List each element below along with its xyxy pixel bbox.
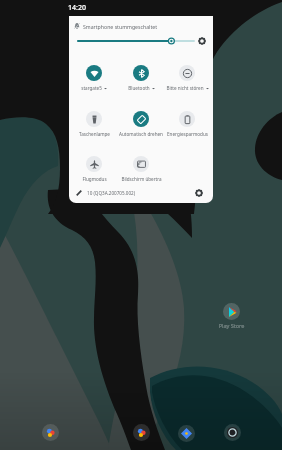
staticText: stargate5 [81, 85, 102, 91]
staticText: Smartphone stummgeschaltet [83, 23, 158, 30]
button[interactable]: Photos [42, 424, 59, 441]
button[interactable]: stargate5 [71, 63, 117, 91]
button[interactable]: Bitte nicht stören [164, 63, 210, 91]
button[interactable]: Photos 2 [133, 424, 150, 441]
staticText: Taschenlampe [79, 131, 110, 137]
button[interactable]: Bildschirm übertra [118, 154, 164, 182]
staticText: 10 (QQ3A.200705.002) [87, 190, 136, 196]
button[interactable]: Taschenlampe [71, 109, 117, 137]
button[interactable]: Energiesparmodus [164, 109, 210, 137]
button[interactable]: Settings [196, 35, 208, 47]
staticText: Bildschirm übertra [121, 176, 162, 182]
other: Play Store [223, 303, 240, 320]
button[interactable]: Flugmodus [71, 154, 117, 182]
button[interactable]: Maps [178, 425, 195, 442]
button[interactable]: Automatisch drehen [118, 109, 164, 137]
staticText: 14:20 [68, 3, 86, 13]
button[interactable]: Brightness [78, 35, 194, 47]
staticText: Automatisch drehen [119, 131, 163, 137]
button[interactable]: Camera [224, 424, 241, 441]
staticText: Energiesparmodus [167, 131, 208, 137]
button[interactable]: Open settings [193, 187, 205, 199]
button[interactable]: Smartphone stummgeschaltet [74, 20, 158, 32]
staticText: Play Store [208, 322, 255, 329]
button[interactable]: 10 (QQ3A.200705.002) [76, 186, 136, 200]
button[interactable]: Bluetooth [118, 63, 164, 91]
staticText: Bitte nicht stören [166, 85, 204, 91]
button[interactable]: Play Store [208, 303, 255, 329]
staticText: Flugmodus [82, 176, 107, 182]
staticText: Bluetooth [128, 85, 150, 91]
